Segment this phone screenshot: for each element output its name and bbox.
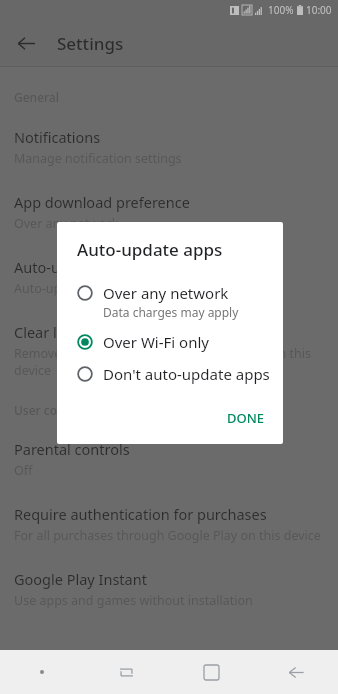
staticText: Auto-update apps <box>77 238 223 261</box>
button[interactable]: Clear local search history <box>14 322 324 378</box>
staticText: 10:00 <box>306 3 332 17</box>
staticText: Auto-update apps <box>14 257 136 277</box>
button[interactable]: Over any network <box>57 277 283 326</box>
staticText: Over any network <box>14 215 119 232</box>
staticText: Notifications <box>14 127 101 147</box>
button[interactable]: Auto-update apps <box>14 257 324 297</box>
staticText: Auto-update apps over Wi-Fi only <box>14 280 209 297</box>
button[interactable]: Over Wi-Fi only <box>57 326 283 358</box>
staticText: Data charges may apply <box>103 304 239 320</box>
staticText: Use apps and games without installation <box>14 592 253 609</box>
button[interactable]: Notifications <box>14 127 324 167</box>
staticText: Removes the searches you have performed … <box>14 345 324 378</box>
staticText: Don't auto-update apps <box>103 364 270 384</box>
button[interactable]: Back <box>8 25 44 61</box>
staticText: User controls <box>14 402 91 418</box>
staticText: DONE <box>227 409 265 427</box>
button[interactable]: App download preference <box>14 192 324 232</box>
staticText: 100% <box>268 3 294 17</box>
staticText: Over Wi-Fi only <box>103 332 209 352</box>
button[interactable]: Require authentication for purchases <box>14 504 324 544</box>
button[interactable]: DONE <box>217 402 275 434</box>
button[interactable]: Back <box>254 650 338 694</box>
staticText: Off <box>14 462 33 479</box>
button[interactable]: Parental controls <box>14 439 324 479</box>
staticText: App download preference <box>14 192 190 212</box>
staticText: Require authentication for purchases <box>14 504 267 524</box>
staticText: General <box>14 89 59 105</box>
staticText: Settings <box>57 32 124 55</box>
button[interactable]: Don't auto-update apps <box>57 358 283 390</box>
staticText: Google Play Instant <box>14 569 147 589</box>
button[interactable]: Recents <box>84 650 168 694</box>
staticText: Over any network <box>103 283 229 303</box>
staticText: Parental controls <box>14 439 130 459</box>
staticText: Manage notification settings <box>14 150 182 167</box>
button[interactable]: Home <box>168 650 254 694</box>
staticText: Clear local search history <box>14 322 184 342</box>
button[interactable]: Google Play Instant <box>14 569 324 609</box>
staticText: For all purchases through Google Play on… <box>14 527 321 544</box>
